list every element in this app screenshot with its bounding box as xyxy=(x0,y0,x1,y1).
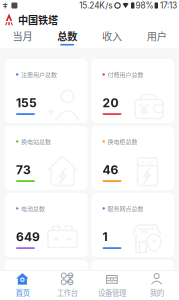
staticText: 46 xyxy=(102,163,118,177)
staticText: 工作台 xyxy=(57,287,78,298)
button[interactable]: 电池总数 xyxy=(5,193,87,257)
button[interactable]: 收入 xyxy=(89,28,134,48)
staticText: 当前逾期用户总数 xyxy=(21,271,69,280)
staticText: 73 xyxy=(16,163,31,177)
button[interactable]: 注册用户总数 xyxy=(5,59,87,123)
button[interactable]: 累计收入 xyxy=(91,260,174,300)
staticText: 换电站总数 xyxy=(21,137,51,146)
button[interactable]: 当月 xyxy=(0,28,45,48)
staticText: 中国铁塔 xyxy=(18,12,58,27)
staticText: 1 xyxy=(102,230,107,244)
staticText: 总数 xyxy=(57,29,77,43)
button[interactable]: 换电站总数 xyxy=(5,126,87,190)
staticText: 收入 xyxy=(102,29,122,43)
button[interactable]: 付费用户总数 xyxy=(91,59,174,123)
button[interactable]: 服务网点总数 xyxy=(91,193,174,257)
button[interactable]: 首页 xyxy=(0,270,45,300)
button[interactable]: 用户 xyxy=(134,28,179,48)
staticText: 20 xyxy=(102,96,118,110)
staticText: 当月 xyxy=(12,29,32,43)
staticText: 98% xyxy=(135,0,153,10)
staticText: 首页 xyxy=(15,287,29,298)
button[interactable]: 设备管理 xyxy=(89,270,134,300)
staticText: 电池总数 xyxy=(21,204,45,213)
staticText: 累计收入 xyxy=(107,271,131,280)
staticText: 服务网点总数 xyxy=(107,204,143,213)
staticText: 649 xyxy=(16,230,40,244)
staticText: 用户 xyxy=(147,29,167,43)
staticText: 换电柜总数 xyxy=(107,137,137,146)
staticText: 付费用户总数 xyxy=(107,70,143,79)
staticText: 设备管理 xyxy=(98,287,126,298)
button[interactable]: 我的 xyxy=(134,270,179,300)
staticText: 注册用户总数 xyxy=(21,70,57,79)
button[interactable]: 当前逾期用户总数 xyxy=(5,260,87,300)
staticText: 我的 xyxy=(150,287,164,298)
button[interactable]: 换电柜总数 xyxy=(91,126,174,190)
button[interactable]: 工作台 xyxy=(45,270,90,300)
staticText: 15.24K/s xyxy=(79,0,112,10)
staticText: 17:13 xyxy=(160,0,177,10)
staticText: 155 xyxy=(16,96,37,110)
button[interactable]: 总数 xyxy=(45,28,90,48)
